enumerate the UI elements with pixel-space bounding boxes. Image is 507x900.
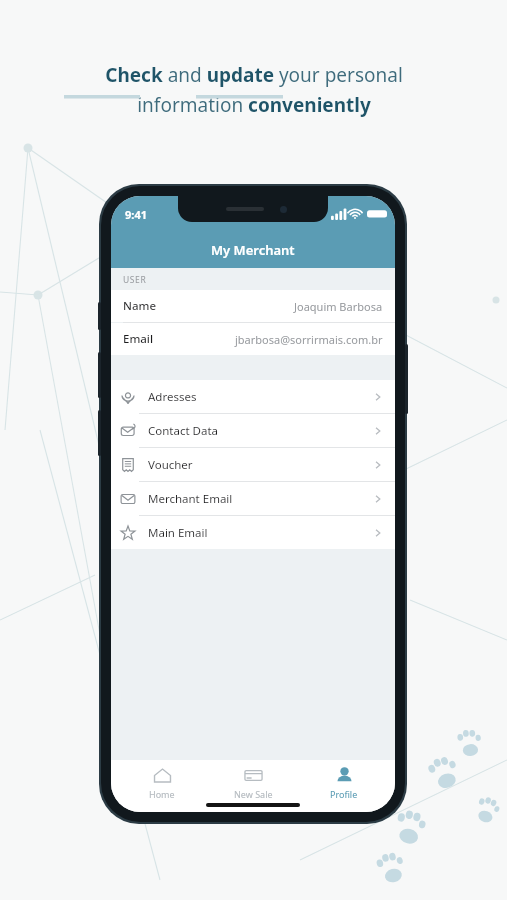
staticText: Profile [330, 788, 358, 800]
button[interactable]: Profile [304, 760, 384, 800]
staticText: Email [123, 331, 154, 347]
staticText: Voucher [148, 457, 193, 473]
staticText: Home [149, 788, 175, 800]
staticText: Name [123, 298, 156, 314]
button[interactable]: New Sale [213, 760, 293, 800]
staticText: jbarbosa@sorrirmais.com.br [235, 332, 383, 347]
staticText: Adresses [148, 389, 197, 405]
staticText: My Merchant [211, 241, 295, 259]
staticText: Main Email [148, 525, 208, 541]
button[interactable]: Email [111, 323, 395, 355]
staticText: New Sale [234, 788, 273, 800]
button[interactable]: Main Email [111, 516, 395, 549]
button[interactable]: Merchant Email [111, 482, 395, 515]
button[interactable]: Contact Data [111, 414, 395, 447]
staticText: Check and update your personal [105, 62, 403, 88]
staticText: Joaquim Barbosa [294, 299, 383, 314]
button[interactable]: Home [122, 760, 202, 800]
button[interactable]: Voucher [111, 448, 395, 481]
staticText: USER [123, 274, 147, 286]
staticText: 9:41 [125, 207, 147, 222]
staticText: Merchant Email [148, 491, 233, 507]
button[interactable]: Name [111, 290, 395, 322]
button[interactable]: Adresses [111, 380, 395, 413]
staticText: Contact Data [148, 423, 219, 439]
staticText: information conveniently [137, 92, 371, 118]
